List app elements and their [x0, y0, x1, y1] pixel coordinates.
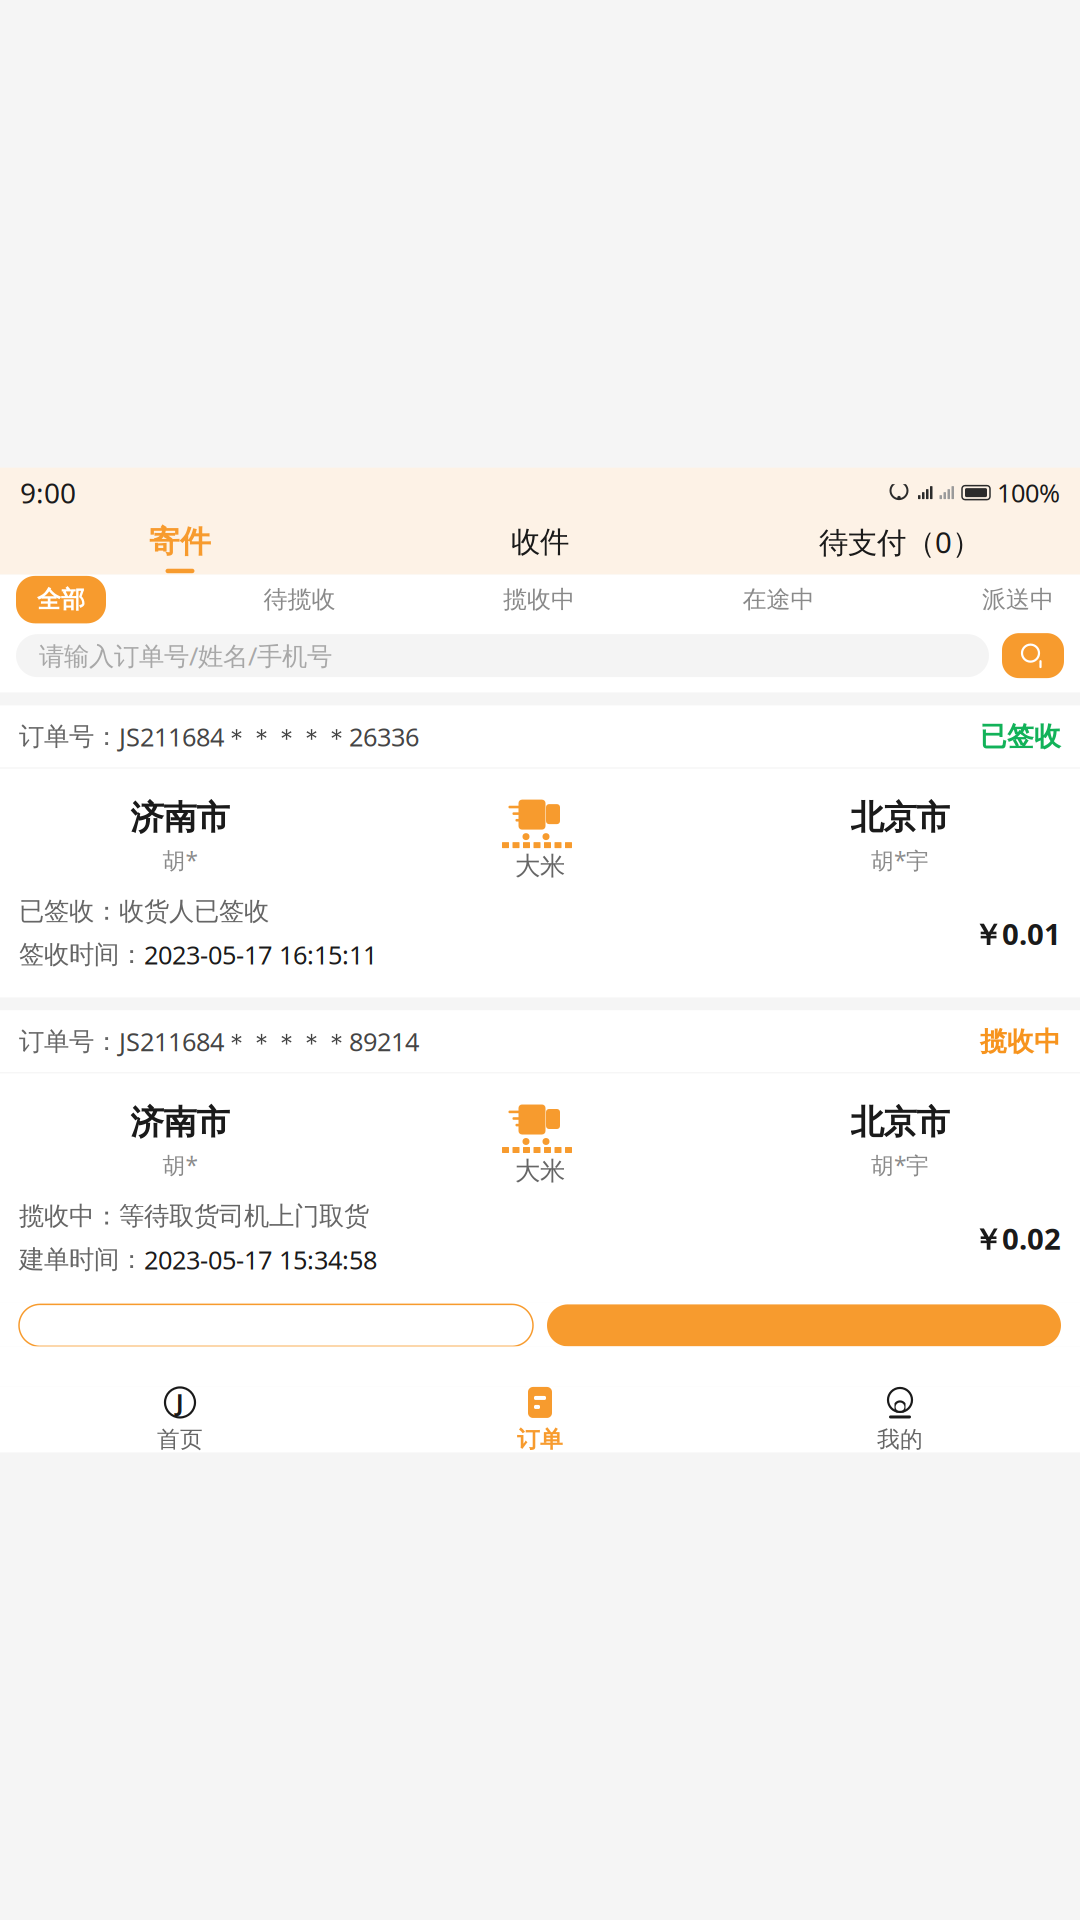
staticText: 北京市: [850, 1102, 949, 1143]
staticText: 济南市: [130, 1102, 229, 1143]
staticText: 大米: [515, 1155, 565, 1187]
staticText: 已签收: [980, 720, 1061, 753]
staticText: 胡*: [162, 1150, 197, 1180]
staticText: 在途中: [742, 585, 814, 614]
staticText: 待支付（0）: [819, 522, 981, 561]
staticText: 9:00: [20, 474, 76, 511]
button[interactable]: 派送中: [972, 576, 1064, 623]
staticText: 签收时间：: [19, 939, 144, 970]
button[interactable]: 订单: [360, 1386, 720, 1452]
staticText: 我的: [877, 1425, 923, 1453]
button[interactable]: 在途中: [732, 576, 824, 623]
staticText: JS211684＊＊＊＊＊89214: [119, 1025, 419, 1058]
button[interactable]: 订单号：: [0, 706, 1080, 997]
staticText: 全部: [37, 585, 85, 614]
staticText: 订单号：: [19, 721, 119, 752]
button[interactable]: 收件: [360, 518, 720, 575]
button[interactable]: 待支付（0）: [720, 518, 1080, 575]
staticText: 揽收中: [503, 585, 575, 614]
staticText: 寄件: [149, 523, 211, 561]
button[interactable]: 全部: [16, 576, 106, 623]
button[interactable]: 搜索: [1002, 633, 1064, 678]
staticText: J: [176, 1387, 184, 1417]
staticText: 揽收中: [980, 1025, 1061, 1058]
button[interactable]: 订单号：: [0, 1010, 1080, 1302]
staticText: 100%: [997, 476, 1060, 509]
staticText: 待揽收: [263, 585, 335, 614]
staticText: 揽收中：等待取货司机上门取货: [19, 1201, 369, 1232]
staticText: 胡*宇: [871, 1150, 929, 1180]
staticText: 胡*: [162, 845, 197, 875]
button[interactable]: 待揽收: [253, 576, 345, 623]
button[interactable]: 我的: [720, 1386, 1080, 1452]
staticText: 首页: [157, 1425, 203, 1453]
staticText: 订单: [517, 1425, 563, 1453]
staticText: 建单时间：: [19, 1244, 144, 1275]
button[interactable]: J: [0, 1386, 360, 1452]
staticText: 收件: [511, 524, 569, 560]
staticText: 派送中: [982, 585, 1054, 614]
staticText: 已签收：收货人已签收: [19, 896, 269, 927]
staticText: 北京市: [850, 797, 949, 838]
staticText: 2023-05-17 15:34:58: [144, 1243, 377, 1276]
staticText: JS211684＊＊＊＊＊26336: [119, 720, 419, 753]
staticText: 订单号：: [19, 1026, 119, 1057]
button[interactable]: 请输入订单号/姓名/手机号: [16, 634, 989, 677]
staticText: 2023-05-17 16:15:11: [144, 938, 377, 971]
staticText: ￥0.01: [973, 914, 1061, 953]
staticText: 请输入订单号/姓名/手机号: [39, 639, 332, 672]
staticText: 大米: [515, 851, 565, 882]
button[interactable]: 寄件: [0, 518, 360, 575]
button[interactable]: 揽收中: [493, 576, 585, 623]
staticText: ￥0.02: [973, 1219, 1061, 1258]
staticText: 济南市: [130, 797, 229, 838]
staticText: 胡*宇: [871, 845, 929, 875]
